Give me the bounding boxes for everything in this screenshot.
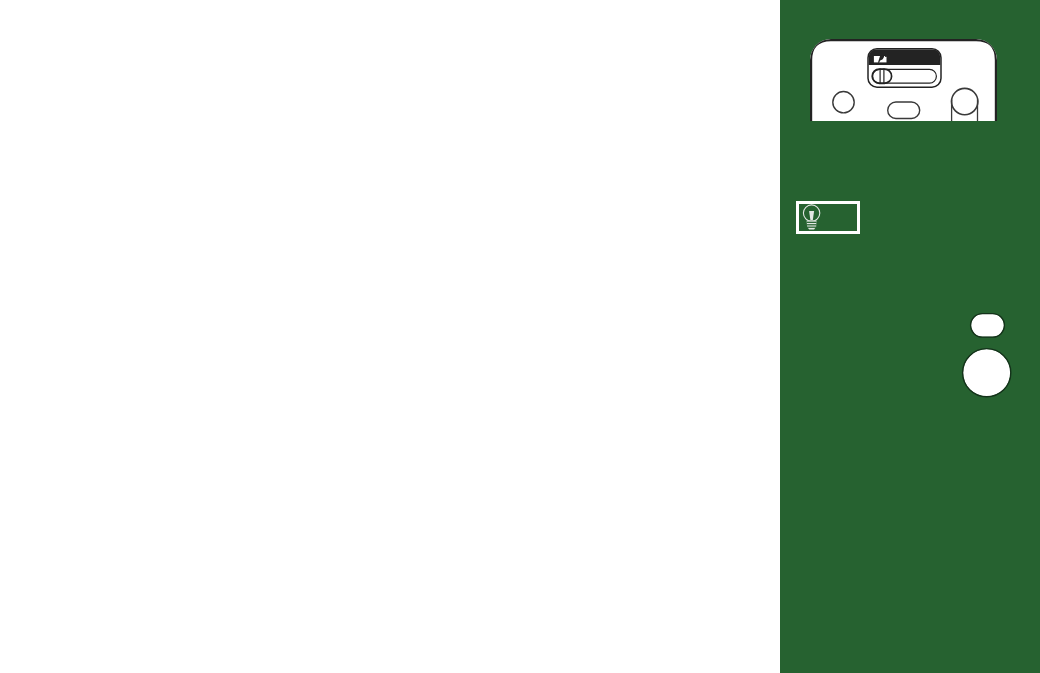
button[interactable]: Action xyxy=(969,312,1006,340)
button[interactable]: Add xyxy=(961,347,1014,400)
button[interactable]: Tip xyxy=(796,201,860,234)
button[interactable]: Device preview xyxy=(810,39,997,121)
